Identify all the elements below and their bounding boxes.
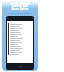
button[interactable] [7,33,33,35]
button[interactable] [7,43,33,45]
button[interactable] [7,45,33,47]
button[interactable] [7,31,33,33]
button[interactable] [7,27,33,29]
staticText: Handle Patient Records Like Never Before [6,2,34,11]
other: Home [19,65,22,68]
button[interactable] [7,41,33,43]
staticText: Smart EMR for modern clinics [6,12,34,18]
button[interactable] [7,25,33,27]
button[interactable] [7,35,33,37]
button[interactable] [7,37,33,39]
button[interactable] [7,39,33,41]
button[interactable] [7,49,33,51]
button[interactable] [7,23,33,25]
button[interactable] [7,51,33,53]
button[interactable] [7,29,33,31]
button[interactable] [7,47,33,49]
button[interactable] [7,53,33,55]
